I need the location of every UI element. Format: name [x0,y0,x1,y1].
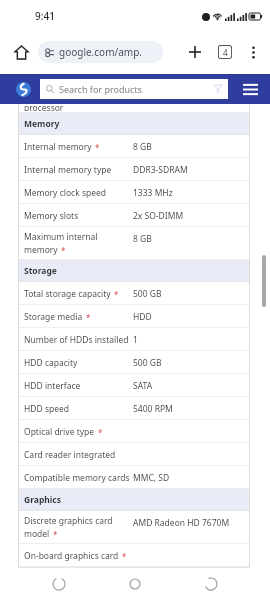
staticText: Storage [24,265,57,277]
staticText: Number of HDDs installed [24,334,129,346]
staticText: Total storage capacity [24,288,111,300]
staticText: AMD Radeon HD 7670M [133,517,230,529]
staticText: * [114,289,119,300]
staticText: Memory slots [24,210,79,222]
button[interactable]: Internal memory type [18,158,250,181]
staticText: 9:41 [35,9,55,23]
staticText: 1333 MHz [133,187,173,199]
staticText: Discrete graphics card [24,515,113,527]
button[interactable]: HDD speed [18,397,250,420]
button[interactable]: Graphics [18,489,250,511]
staticText: 1 [133,334,138,346]
button[interactable]: google.com/amp. [38,41,163,63]
button[interactable]: HDD interface [18,374,250,397]
button[interactable]: Home [8,39,34,65]
staticText: processor [24,102,64,111]
staticText: * [53,529,58,540]
staticText: DDR3-SDRAM [133,164,188,176]
button[interactable]: Home [118,568,152,600]
staticText: Storage media [24,311,83,323]
button[interactable]: New tab [182,39,208,65]
button[interactable]: Maximum internal [18,227,250,260]
staticText: * [86,312,91,323]
button[interactable]: Card reader integrated [18,443,250,466]
staticText: 5400 RPM [133,403,173,415]
staticText: 4 [223,47,228,58]
staticText: HDD interface [24,380,81,392]
staticText: HDD speed [24,403,70,415]
button[interactable]: processor [18,104,250,113]
button[interactable]: Memory slots [18,204,250,227]
staticText: 8 GB [133,141,152,153]
button[interactable]: Optical drive type [18,420,250,443]
button[interactable]: On-board graphics card [18,544,250,567]
staticText: Graphics [24,494,61,506]
button[interactable]: Number of HDDs installed [18,328,250,351]
staticText: * [122,551,127,562]
staticText: Memory [24,118,60,130]
staticText: * [95,142,100,153]
button[interactable]: HDD capacity [18,351,250,374]
button[interactable]: Recent apps [194,568,228,600]
button[interactable]: Site logo [12,78,34,100]
staticText: 500 GB [133,357,162,369]
button[interactable]: Storage [18,260,250,282]
button[interactable]: Discrete graphics card [18,511,250,544]
staticText: 2x SO-DIMM [133,210,184,222]
button[interactable]: More options [240,39,266,65]
staticText: SATA [133,380,153,392]
button[interactable]: Total storage capacity [18,282,250,305]
staticText: 8 GB [133,233,152,245]
staticText: Memory clock speed [24,187,107,199]
staticText: * [61,245,66,256]
staticText: Card reader integrated [24,449,116,461]
button[interactable]: Memory clock speed [18,181,250,204]
staticText: Optical drive type [24,426,95,438]
staticText: HDD capacity [24,357,78,369]
button[interactable]: Back [42,568,76,600]
staticText: Internal memory type [24,164,112,176]
staticText: 500 GB [133,288,162,300]
staticText: HDD [133,311,152,323]
staticText: Search for products [59,83,142,95]
staticText: * [98,427,103,438]
button[interactable]: Compatible memory cards [18,466,250,489]
button[interactable]: Memory [18,113,250,135]
button[interactable]: Tabs [212,39,238,65]
staticText: model [24,528,50,540]
staticText: MMC, SD [133,472,170,484]
staticText: Internal memory [24,141,92,153]
staticText: Compatible memory cards [24,472,130,484]
button[interactable]: Search for products [40,79,228,99]
button[interactable]: Storage media [18,305,250,328]
button[interactable]: Menu [238,77,262,101]
staticText: On-board graphics card [24,550,119,562]
button[interactable]: Internal memory [18,135,250,158]
staticText: memory [24,244,58,256]
staticText: Maximum internal [24,231,98,243]
staticText: google.com/amp. [59,45,143,59]
